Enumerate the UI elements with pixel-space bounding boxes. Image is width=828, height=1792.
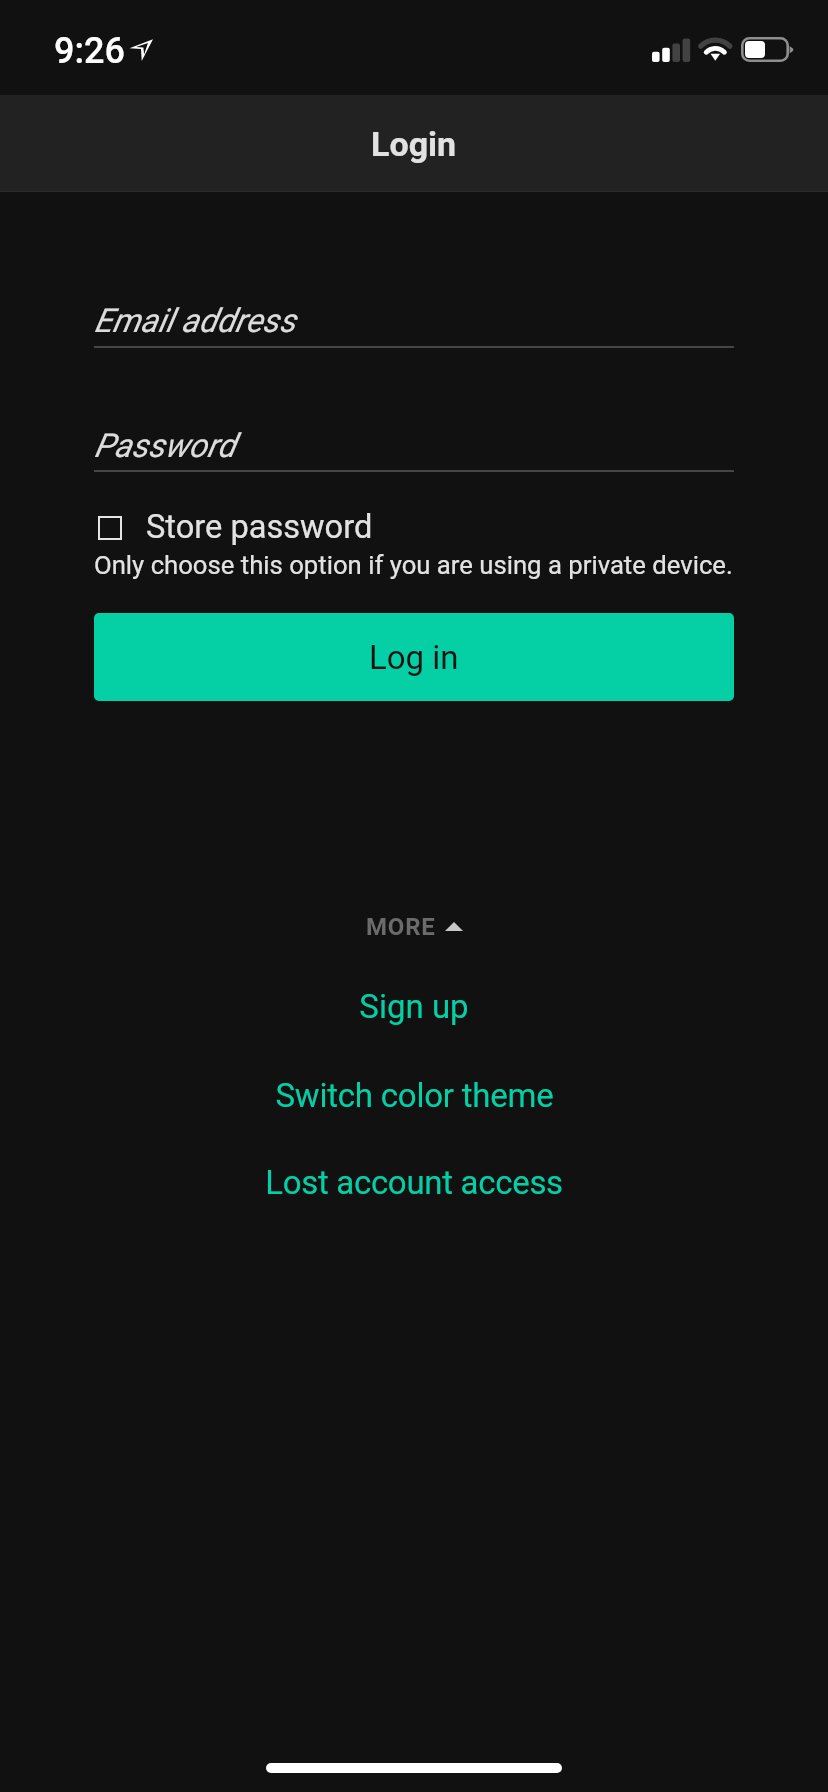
staticText: Email address (94, 301, 296, 340)
button[interactable]: Login (0, 95, 828, 192)
other: Wi-Fi (698, 36, 734, 62)
button[interactable]: Lost account access (0, 1159, 828, 1205)
staticText: Only choose this option if you are using… (94, 550, 733, 580)
button[interactable]: Store password (94, 504, 734, 550)
other: Cellular signal (652, 38, 691, 62)
button[interactable]: Sign up (0, 983, 828, 1029)
staticText: Login (371, 124, 457, 164)
other: Battery (741, 37, 794, 62)
staticText: MORE (366, 913, 436, 941)
button[interactable]: Log in (94, 613, 734, 701)
staticText: Switch color theme (275, 1076, 554, 1115)
staticText: Sign up (359, 987, 469, 1026)
staticText: 9:26 (54, 30, 125, 72)
button[interactable]: MORE (0, 904, 828, 950)
staticText: Store password (146, 508, 373, 546)
staticText: Lost account access (265, 1163, 563, 1202)
staticText: Password (94, 426, 236, 465)
other: Location active (129, 37, 153, 61)
button[interactable]: Switch color theme (0, 1072, 828, 1118)
staticText: Log in (369, 638, 459, 677)
